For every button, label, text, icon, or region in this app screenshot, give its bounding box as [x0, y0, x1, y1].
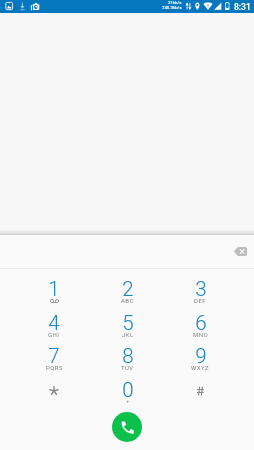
staticText: 4 — [48, 311, 60, 335]
button[interactable]: Pound — [164, 370, 237, 403]
button[interactable]: 8 TUV — [91, 336, 164, 369]
staticText: DEF — [194, 297, 207, 304]
staticText: + — [126, 398, 130, 406]
staticText: 21kb/s — [168, 0, 182, 5]
button[interactable]: Star — [17, 370, 91, 403]
button[interactable]: 0 plus — [91, 370, 164, 403]
staticText: JKL — [122, 331, 134, 338]
button[interactable]: 7 PQRS — [17, 336, 91, 369]
staticText: TUV — [121, 364, 134, 371]
staticText: 1 — [48, 277, 60, 301]
button[interactable]: 4 GHI — [17, 303, 91, 336]
button[interactable]: Call — [112, 412, 142, 442]
staticText: PQRS — [46, 364, 63, 371]
staticText: 2 — [122, 277, 134, 301]
button[interactable]: 1 voicemail — [17, 269, 91, 302]
staticText: WXYZ — [191, 364, 210, 371]
staticText: 5 — [122, 311, 134, 335]
button[interactable]: 5 JKL — [91, 303, 164, 336]
staticText: 0 — [122, 378, 134, 402]
button[interactable]: 9 WXYZ — [164, 336, 237, 369]
staticText: 740.36b/s — [162, 5, 182, 10]
staticText: 8:31 — [234, 2, 251, 12]
staticText: 3 — [195, 277, 207, 301]
staticText: 6 — [195, 311, 207, 335]
button[interactable]: 3 DEF — [164, 269, 237, 302]
staticText: MNO — [193, 331, 208, 338]
button[interactable]: 2 ABC — [91, 269, 164, 302]
button[interactable]: 6 MNO — [164, 303, 237, 336]
staticText: ABC — [121, 297, 134, 304]
staticText: 7 — [48, 344, 60, 368]
staticText: 8 — [122, 344, 134, 368]
button[interactable]: Backspace — [227, 238, 253, 264]
staticText: 9 — [195, 344, 207, 368]
staticText: GHI — [48, 331, 60, 338]
